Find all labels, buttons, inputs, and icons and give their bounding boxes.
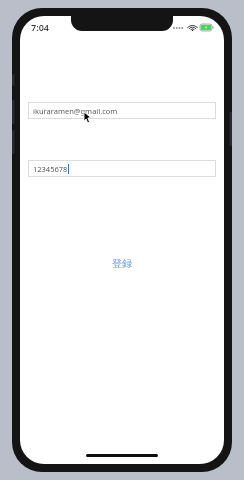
- staticText: 12345678: [33, 164, 68, 174]
- staticText: 登録: [112, 257, 132, 270]
- staticText: ikuraramen@gmail.com: [33, 106, 118, 116]
- button[interactable]: 登録: [102, 254, 142, 273]
- button[interactable]: 12345678: [28, 160, 216, 177]
- staticText: 7:04: [31, 21, 49, 33]
- button[interactable]: ikuraramen@gmail.com: [28, 102, 216, 119]
